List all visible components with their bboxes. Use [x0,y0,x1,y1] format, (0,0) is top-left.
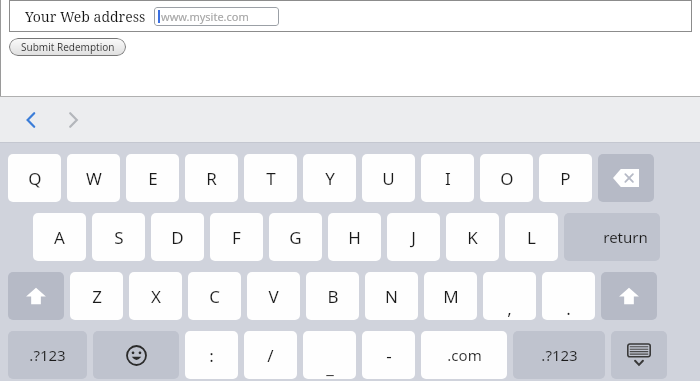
button[interactable]: I [421,154,474,202]
staticText: P [560,167,571,190]
button[interactable]: G [269,213,322,261]
staticText: L [527,226,536,249]
staticText: F [232,226,241,249]
staticText: B [327,285,339,308]
button[interactable]: C [188,272,241,320]
button[interactable]: Y [303,154,356,202]
button[interactable]: F [210,213,263,261]
button[interactable]: T [244,154,297,202]
staticText: N [385,285,398,308]
staticText: Z [92,285,102,308]
button[interactable]: Z [70,272,123,320]
staticText: _ [326,356,334,379]
button[interactable]: Emoji [93,331,179,379]
staticText: D [171,226,184,249]
button[interactable]: / [244,331,297,379]
button[interactable]: H [328,213,381,261]
staticText: S [114,226,124,249]
button[interactable]: E [126,154,179,202]
staticText: www.mysite.com [161,9,249,24]
staticText: : [209,344,214,367]
button[interactable]: Shift [601,272,657,320]
button[interactable]: Previous field [14,103,48,137]
staticText: / [267,344,274,367]
button[interactable]: - [362,331,415,379]
staticText: Y [325,167,335,190]
button[interactable]: D [151,213,204,261]
button[interactable]: K [446,213,499,261]
button[interactable]: B [306,272,359,320]
button[interactable]: Q [8,154,61,202]
button[interactable]: . [542,272,595,320]
button[interactable]: A [33,213,86,261]
staticText: U [382,167,395,190]
staticText: .com [447,345,482,365]
staticText: Q [28,167,42,190]
button[interactable]: : [185,331,238,379]
staticText: H [348,226,361,249]
button[interactable]: P [539,154,592,202]
button[interactable]: L [505,213,558,261]
button[interactable]: S [92,213,145,261]
button[interactable]: Backspace [598,154,654,202]
staticText: .?123 [541,345,578,365]
staticText: return [603,227,648,247]
button[interactable]: Submit Redemption [9,38,126,56]
staticText: . [566,297,571,320]
button[interactable]: _ [303,331,356,379]
button[interactable]: Next field [56,103,90,137]
button[interactable]: X [129,272,182,320]
staticText: Your Web address [25,7,146,26]
staticText: I [445,167,451,190]
staticText: O [500,167,514,190]
button[interactable]: J [387,213,440,261]
button[interactable]: N [365,272,418,320]
staticText: , [507,297,512,320]
button[interactable]: M [424,272,477,320]
staticText: K [467,226,478,249]
staticText: Submit Redemption [21,40,115,54]
button[interactable]: www.mysite.com [154,7,279,26]
button[interactable]: , [483,272,536,320]
button[interactable]: .?123 [513,331,605,379]
staticText: - [386,344,392,367]
staticText: A [54,226,65,249]
button[interactable]: O [480,154,533,202]
button[interactable]: R [185,154,238,202]
staticText: C [209,285,220,308]
staticText: X [151,285,161,308]
button[interactable]: U [362,154,415,202]
button[interactable]: .com [421,331,507,379]
staticText: E [148,167,158,190]
staticText: R [206,167,217,190]
button[interactable]: .?123 [8,331,87,379]
button[interactable]: Hide keyboard [611,331,667,379]
staticText: G [289,226,302,249]
staticText: W [86,167,102,190]
staticText: V [268,285,279,308]
staticText: .?123 [29,345,66,365]
staticText: T [266,167,276,190]
button[interactable]: Shift [8,272,64,320]
button[interactable]: return [564,213,660,261]
button[interactable]: V [247,272,300,320]
button[interactable]: W [67,154,120,202]
staticText: J [411,226,416,249]
staticText: M [443,285,459,308]
